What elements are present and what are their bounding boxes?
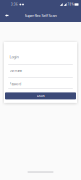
button[interactable]: LOGIN <box>5 92 76 99</box>
staticText: Username <box>9 69 22 73</box>
staticText: 78% <box>67 3 73 6</box>
button[interactable]: Back <box>0 9 13 22</box>
staticText: Password <box>9 82 21 86</box>
staticText: Login <box>9 54 18 59</box>
staticText: Superflex Self Scan <box>24 13 56 18</box>
staticText: LOGIN <box>36 94 44 98</box>
staticText: 3:36 <box>11 3 18 6</box>
